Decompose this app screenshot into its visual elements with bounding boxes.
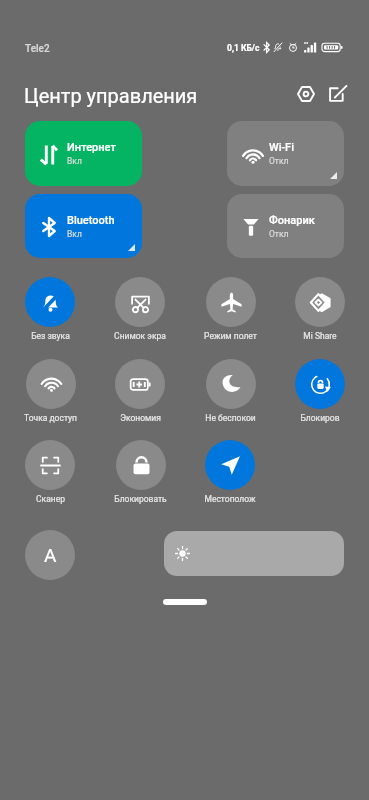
button[interactable]: Settings bbox=[292, 80, 320, 108]
button[interactable]: Режим полет bbox=[206, 277, 256, 327]
staticText: 0,1 КБ/с bbox=[227, 43, 260, 53]
staticText: Откл bbox=[269, 156, 289, 166]
staticText: Tele2 bbox=[25, 43, 50, 55]
button[interactable]: Местополож bbox=[205, 440, 255, 490]
staticText: Не беспокои bbox=[205, 413, 256, 423]
button[interactable]: Auto brightness bbox=[25, 530, 75, 580]
button[interactable]: Экономия bbox=[115, 359, 165, 409]
staticText: A bbox=[44, 544, 57, 566]
button[interactable]: Без звука bbox=[25, 277, 75, 327]
staticText: Экономия bbox=[120, 413, 161, 423]
button[interactable]: Bluetooth bbox=[25, 194, 142, 258]
button[interactable]: Снимок экра bbox=[115, 277, 165, 327]
staticText: Без звука bbox=[31, 331, 70, 341]
staticText: Mi Share bbox=[303, 331, 337, 341]
staticText: Блокиров bbox=[300, 413, 340, 423]
staticText: Центр управления bbox=[24, 84, 198, 107]
staticText: Wi-Fi bbox=[269, 141, 294, 154]
button[interactable]: Блокировать bbox=[116, 440, 166, 490]
staticText: Откл bbox=[269, 229, 289, 239]
staticText: Фонарик bbox=[269, 214, 315, 227]
staticText: Интернет bbox=[67, 141, 116, 154]
button[interactable]: Точка доступ bbox=[26, 359, 76, 409]
button[interactable]: Wi-Fi bbox=[227, 121, 344, 186]
staticText: Снимок экра bbox=[114, 331, 166, 341]
staticText: Режим полет bbox=[204, 331, 257, 341]
button[interactable]: Mi Share bbox=[295, 277, 345, 327]
staticText: Bluetooth bbox=[67, 214, 115, 227]
button[interactable]: Brightness bbox=[164, 531, 344, 576]
button[interactable]: Фонарик bbox=[227, 194, 344, 258]
button[interactable]: Не беспокои bbox=[206, 359, 256, 409]
button[interactable]: Блокиров bbox=[295, 359, 345, 409]
button[interactable]: Edit bbox=[324, 80, 352, 108]
staticText: Сканер bbox=[36, 494, 65, 504]
staticText: Блокировать bbox=[114, 494, 167, 504]
button[interactable]: Сканер bbox=[25, 440, 75, 490]
staticText: Вкл bbox=[67, 156, 82, 166]
staticText: Точка доступ bbox=[24, 413, 77, 423]
staticText: Вкл bbox=[67, 229, 82, 239]
staticText: Местополож bbox=[204, 494, 256, 504]
button[interactable]: Интернет bbox=[25, 121, 142, 186]
